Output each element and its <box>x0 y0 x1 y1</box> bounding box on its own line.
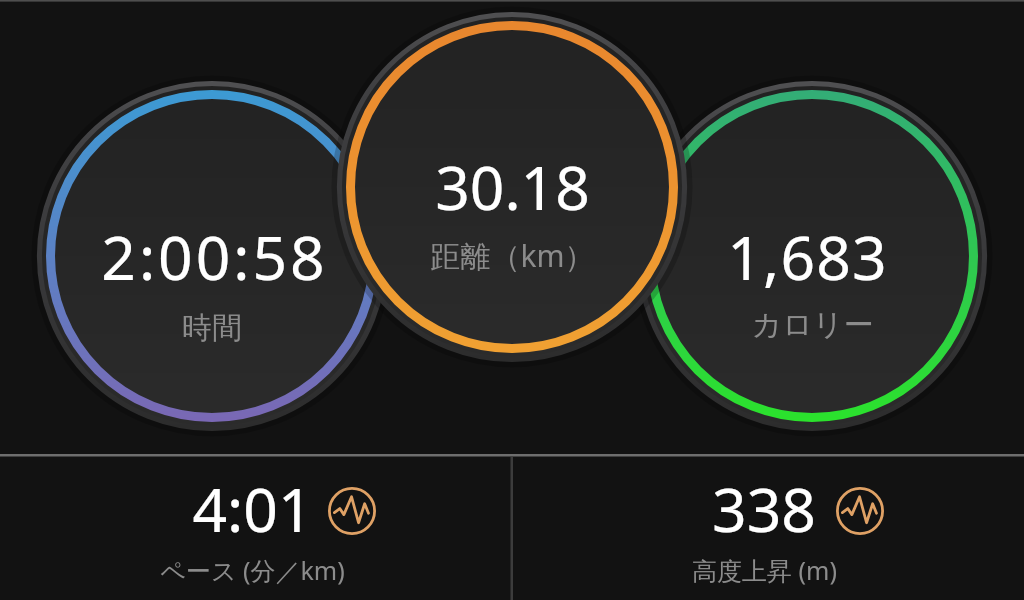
staticText: 2:00:58 <box>101 215 328 297</box>
staticText: 1,683 <box>727 215 888 297</box>
staticText: 4:01 <box>192 467 313 549</box>
staticText: 30.18 <box>435 145 590 227</box>
staticText: カロリー <box>751 306 874 344</box>
other: Activity graph <box>328 487 376 535</box>
button[interactable]: 4:01 <box>0 457 512 600</box>
staticText: 距離（km） <box>430 235 595 276</box>
other: Activity graph <box>836 487 884 535</box>
staticText: 時間 <box>182 309 242 347</box>
staticText: 高度上昇 (m) <box>692 553 837 587</box>
button[interactable]: 338 <box>512 457 1024 600</box>
staticText: ペース (分／km) <box>160 553 345 587</box>
staticText: 338 <box>712 467 816 549</box>
